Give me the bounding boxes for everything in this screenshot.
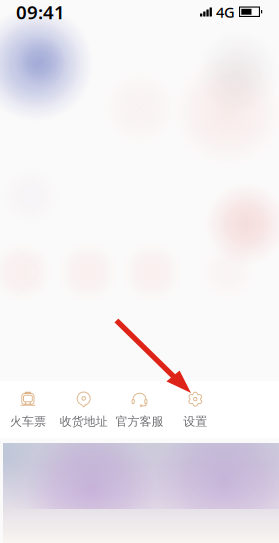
- button[interactable]: 收货地址: [56, 381, 112, 438]
- staticText: 收货地址: [60, 414, 108, 429]
- staticText: 火车票: [10, 414, 46, 429]
- staticText: 4G: [216, 2, 235, 22]
- staticText: 设置: [183, 414, 207, 429]
- button[interactable]: 官方客服: [112, 381, 167, 438]
- button[interactable]: 设置: [167, 381, 223, 438]
- staticText: 09:41: [16, 0, 65, 24]
- button[interactable]: 火车票: [0, 381, 56, 438]
- staticText: 官方客服: [115, 414, 163, 429]
